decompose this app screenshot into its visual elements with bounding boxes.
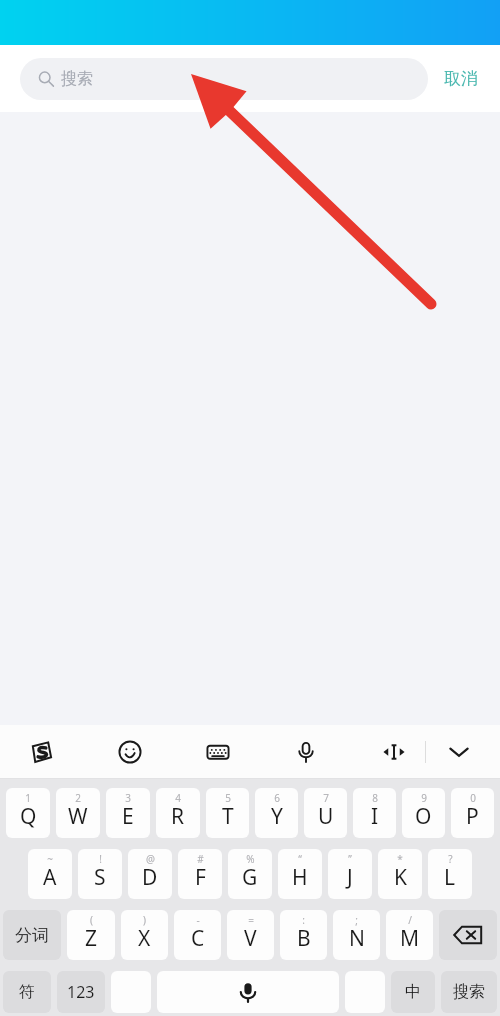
button[interactable]: Emoji <box>111 733 149 771</box>
staticText: I <box>371 802 379 831</box>
staticText: / <box>408 913 412 927</box>
button[interactable]: ” <box>328 849 372 899</box>
button[interactable]: / <box>386 910 433 960</box>
staticText: ~ <box>47 852 53 866</box>
button[interactable]: 0 <box>451 788 494 838</box>
staticText: 3 <box>125 791 131 805</box>
button[interactable]: 搜索 <box>20 58 428 100</box>
button[interactable]: - <box>174 910 221 960</box>
staticText: F <box>195 863 206 892</box>
staticText: “ <box>298 852 302 866</box>
staticText: * <box>397 852 403 866</box>
staticText: J <box>347 863 353 892</box>
staticText: 123 <box>67 981 95 1003</box>
staticText: C <box>191 924 205 953</box>
staticText: 9 <box>421 791 427 805</box>
staticText: : <box>302 913 305 927</box>
button[interactable]: 搜索 <box>441 971 497 1013</box>
button[interactable]: 取消 <box>428 68 480 89</box>
staticText: H <box>292 863 308 892</box>
staticText: 7 <box>323 791 329 805</box>
button[interactable]: % <box>228 849 272 899</box>
button[interactable]: 8 <box>353 788 396 838</box>
staticText: ” <box>348 852 352 866</box>
staticText: ; <box>355 913 358 927</box>
button[interactable]: 中 <box>391 971 435 1013</box>
button[interactable]: ) <box>121 910 168 960</box>
staticText: Y <box>271 802 283 831</box>
staticText: U <box>318 802 334 831</box>
button[interactable]: : <box>280 910 327 960</box>
button[interactable]: 分词 <box>3 910 61 960</box>
staticText: 8 <box>372 791 378 805</box>
staticText: - <box>196 913 200 927</box>
staticText: E <box>122 802 134 831</box>
staticText: 2 <box>75 791 81 805</box>
staticText: % <box>246 852 255 866</box>
button[interactable]: 9 <box>402 788 445 838</box>
staticText: 0 <box>470 791 476 805</box>
button[interactable]: “ <box>278 849 322 899</box>
staticText: Q <box>20 802 37 831</box>
staticText: O <box>415 802 432 831</box>
staticText: Z <box>85 924 98 953</box>
staticText: 搜索 <box>453 982 485 1002</box>
button[interactable]: Move cursor <box>375 733 413 771</box>
staticText: D <box>142 863 158 892</box>
button[interactable]: 7 <box>304 788 347 838</box>
staticText: W <box>68 802 88 831</box>
staticText: @ <box>146 852 155 866</box>
staticText: 6 <box>274 791 280 805</box>
button[interactable]: Voice input <box>287 733 325 771</box>
button[interactable]: Keyboard layout <box>199 733 237 771</box>
staticText: M <box>400 924 420 953</box>
staticText: T <box>222 802 234 831</box>
staticText: A <box>43 863 57 892</box>
staticText: P <box>466 802 479 831</box>
staticText: 搜索 <box>61 69 93 89</box>
staticText: V <box>244 924 257 953</box>
staticText: B <box>297 924 311 953</box>
staticText: S <box>94 863 106 892</box>
button[interactable]: * <box>378 849 422 899</box>
button[interactable]: @ <box>128 849 172 899</box>
staticText: 5 <box>225 791 231 805</box>
button[interactable]: ~ <box>28 849 72 899</box>
staticText: 4 <box>175 791 181 805</box>
staticText: = <box>248 913 254 927</box>
staticText: L <box>444 863 456 892</box>
button[interactable]: 4 <box>156 788 200 838</box>
button[interactable]: # <box>178 849 222 899</box>
staticText: 取消 <box>444 68 478 89</box>
button[interactable]: 1 <box>6 788 50 838</box>
button[interactable]: 5 <box>206 788 249 838</box>
button[interactable]: Sogou input method <box>22 733 60 771</box>
staticText: ! <box>99 852 102 866</box>
button[interactable]: ? <box>428 849 472 899</box>
staticText: # <box>197 852 204 866</box>
staticText: N <box>349 924 365 953</box>
button[interactable]: 3 <box>106 788 150 838</box>
staticText: 分词 <box>15 925 49 946</box>
button[interactable]: ! <box>78 849 122 899</box>
button[interactable]: = <box>227 910 274 960</box>
staticText: ) <box>143 913 146 927</box>
button[interactable]: ; <box>333 910 380 960</box>
button[interactable]: Voice input <box>157 971 339 1013</box>
button[interactable]: 符 <box>3 971 51 1013</box>
staticText: 中 <box>405 982 421 1002</box>
button[interactable]: 123 <box>57 971 105 1013</box>
button[interactable]: Backspace <box>439 910 497 960</box>
button[interactable]: 2 <box>56 788 100 838</box>
staticText: X <box>138 924 151 953</box>
staticText: 1 <box>25 791 31 805</box>
staticText: R <box>171 802 185 831</box>
button[interactable]: Hide keyboard <box>440 733 478 771</box>
staticText: ? <box>448 852 453 866</box>
button[interactable]: 6 <box>255 788 298 838</box>
staticText: ( <box>90 913 93 927</box>
button[interactable]: ( <box>67 910 115 960</box>
staticText: K <box>394 863 407 892</box>
